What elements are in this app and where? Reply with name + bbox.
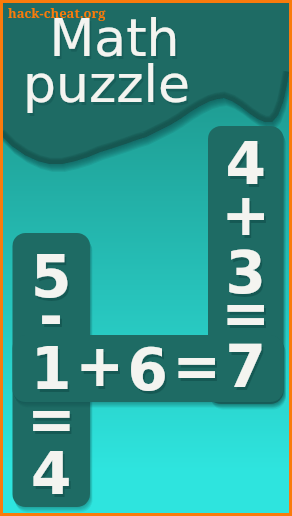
button[interactable] [0,0,292,516]
